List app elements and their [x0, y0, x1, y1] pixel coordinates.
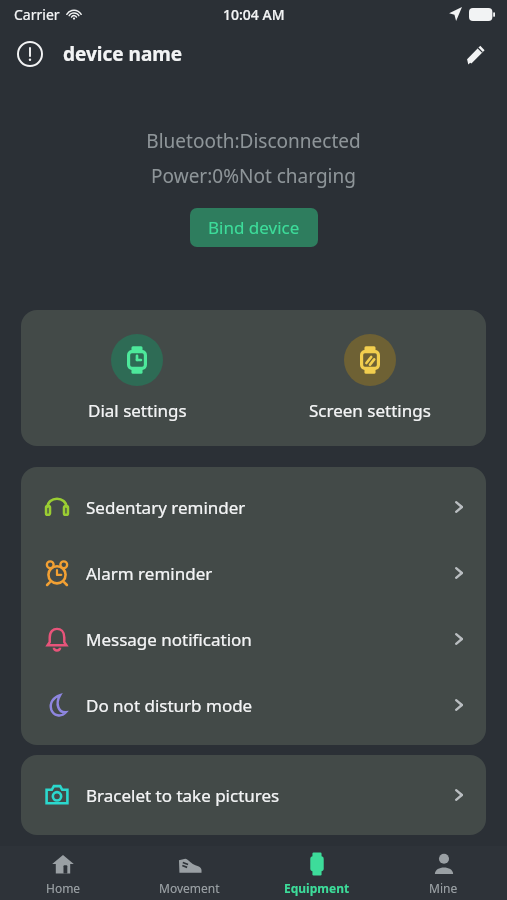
staticText: 10:04 AM [223, 5, 285, 24]
button[interactable]: Bracelet to take pictures [21, 762, 486, 828]
staticText: device name [63, 41, 183, 67]
staticText: Dial settings [88, 399, 187, 422]
button[interactable]: Bind device [190, 208, 318, 247]
staticText: Alarm reminder [86, 562, 450, 585]
button[interactable]: Edit device name [453, 32, 497, 76]
button[interactable]: Dial settings [21, 332, 253, 424]
staticText: Mine [429, 880, 458, 896]
button[interactable]: Sedentary reminder [21, 474, 486, 540]
button[interactable]: Movement [126, 846, 253, 900]
staticText: Bind device [208, 216, 300, 239]
button[interactable]: Alarm reminder [21, 540, 486, 606]
staticText: Equipment [284, 880, 350, 896]
staticText: Screen settings [309, 399, 431, 422]
button[interactable]: Mine [380, 846, 507, 900]
button[interactable]: Info [10, 34, 50, 74]
staticText: Movement [159, 880, 220, 896]
button[interactable]: Do not disturb mode [21, 672, 486, 738]
staticText: Power:0%Not charging [151, 163, 356, 189]
staticText: Bluetooth:Disconnected [146, 128, 361, 154]
staticText: Bracelet to take pictures [86, 784, 450, 807]
staticText: Message notification [86, 628, 450, 651]
staticText: Home [46, 880, 81, 896]
button[interactable]: Message notification [21, 606, 486, 672]
staticText: Do not disturb mode [86, 694, 450, 717]
button[interactable]: Equipment [253, 846, 380, 900]
staticText: Carrier [14, 5, 60, 24]
button[interactable]: Home [0, 846, 126, 900]
button[interactable]: Screen settings [253, 332, 486, 424]
staticText: Sedentary reminder [86, 496, 450, 519]
